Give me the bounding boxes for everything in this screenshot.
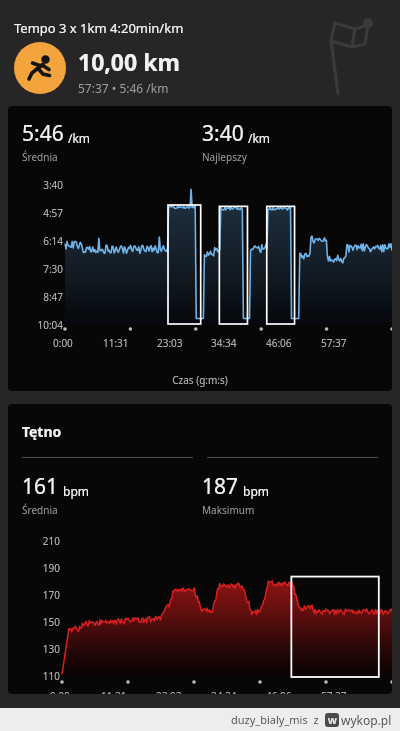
staticText: 5:46	[22, 119, 64, 148]
staticText: 10,00 km	[78, 46, 180, 77]
staticText: Najlepszy	[202, 150, 247, 164]
staticText: 34:34	[211, 689, 237, 694]
staticText: 190	[28, 561, 60, 575]
staticText: Średnia	[22, 150, 58, 164]
staticText: /km	[248, 130, 271, 146]
staticText: 6:14	[28, 234, 63, 248]
staticText: 187	[202, 472, 239, 501]
staticText: 57:37	[321, 689, 347, 694]
staticText: 46:06	[266, 336, 292, 350]
staticText: 3:40	[28, 178, 63, 192]
staticText: W	[328, 714, 337, 726]
staticText: 10:04	[28, 318, 63, 332]
staticText: Tempo 3 x 1km 4:20min/km	[14, 19, 184, 37]
staticText: 0:00	[50, 689, 70, 694]
staticText: 23:03	[156, 689, 182, 694]
staticText: duzy_bialy_mis z	[231, 712, 319, 727]
staticText: 4:57	[28, 206, 63, 220]
staticText: 150	[28, 615, 60, 629]
staticText: bpm	[243, 483, 269, 499]
button[interactable]: Running activity	[14, 42, 66, 94]
staticText: 3:40	[202, 119, 244, 148]
staticText: 210	[28, 534, 60, 548]
staticText: 23:03	[157, 336, 183, 350]
staticText: Czas (g:m:s)	[8, 373, 392, 387]
staticText: 7:30	[28, 262, 63, 276]
staticText: 11:31	[101, 689, 127, 694]
staticText: 11:31	[103, 336, 129, 350]
staticText: wykop.pl	[341, 712, 392, 728]
staticText: 57:37	[321, 336, 347, 350]
staticText: 8:47	[28, 290, 63, 304]
button[interactable]: 5:46	[8, 106, 392, 391]
staticText: /km	[68, 130, 91, 146]
staticText: 46:06	[266, 689, 292, 694]
button[interactable]: Tętno	[8, 404, 392, 694]
staticText: 170	[28, 588, 60, 602]
staticText: 57:37 • 5:46 /km	[78, 80, 169, 96]
staticText: Maksimum	[202, 503, 255, 517]
staticText: bpm	[63, 483, 89, 499]
staticText: Tętno	[22, 422, 62, 441]
staticText: Średnia	[22, 503, 58, 517]
staticText: 161	[22, 472, 59, 501]
staticText: 130	[28, 642, 60, 656]
staticText: 110	[28, 669, 60, 683]
button[interactable]: Goal flag	[318, 14, 380, 96]
staticText: 34:34	[211, 336, 237, 350]
staticText: 0:00	[53, 336, 73, 350]
